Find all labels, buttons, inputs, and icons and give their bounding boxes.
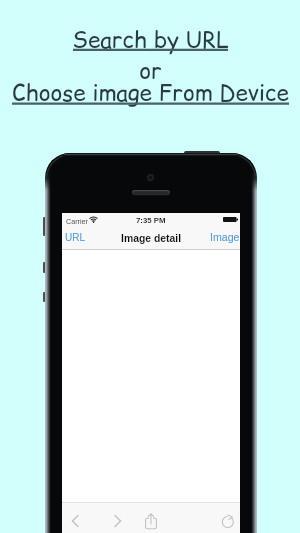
staticText: Choose image From Device: [12, 77, 289, 108]
staticText: Carrier: [66, 217, 88, 225]
button[interactable]: Share: [140, 511, 162, 533]
staticText: Image: [210, 231, 240, 243]
button[interactable]: Image: [209, 226, 241, 248]
staticText: Image detail: [121, 233, 182, 245]
button[interactable]: URL: [62, 226, 88, 248]
button[interactable]: Reload: [217, 511, 239, 533]
staticText: URL: [65, 232, 86, 243]
staticText: 7:35 PM: [136, 216, 166, 225]
staticText: or: [139, 55, 162, 86]
staticText: Search by URL: [72, 24, 229, 55]
button[interactable]: Back: [64, 510, 86, 532]
button[interactable]: Forward: [107, 510, 129, 532]
